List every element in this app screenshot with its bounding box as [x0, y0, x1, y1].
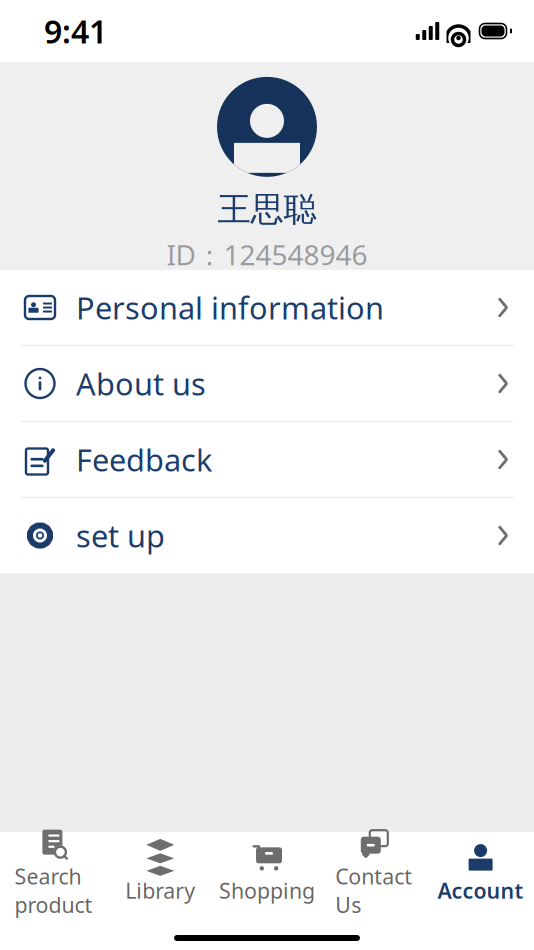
staticText: Library — [125, 876, 195, 905]
staticText: ID：124548946 — [166, 236, 367, 273]
staticText: set up — [76, 515, 165, 556]
button[interactable]: Account — [427, 840, 534, 906]
button[interactable]: Contact Us — [320, 840, 427, 906]
staticText: 王思聪 — [217, 189, 316, 230]
staticText: 9:41 — [44, 10, 107, 52]
button[interactable]: Search product — [0, 840, 107, 906]
staticText: Search product — [14, 862, 92, 919]
button[interactable]: set up — [0, 498, 534, 573]
staticText: Personal information — [76, 287, 384, 328]
button[interactable]: Library — [107, 840, 214, 906]
staticText: Account — [438, 876, 524, 905]
staticText: Contact Us — [335, 862, 412, 919]
staticText: Shopping — [219, 876, 315, 905]
button[interactable]: Personal information — [0, 270, 534, 345]
button[interactable]: About us — [0, 346, 534, 421]
staticText: Feedback — [76, 439, 212, 480]
button[interactable]: Shopping — [214, 840, 320, 906]
staticText: About us — [76, 363, 206, 404]
button[interactable]: Feedback — [0, 422, 534, 497]
